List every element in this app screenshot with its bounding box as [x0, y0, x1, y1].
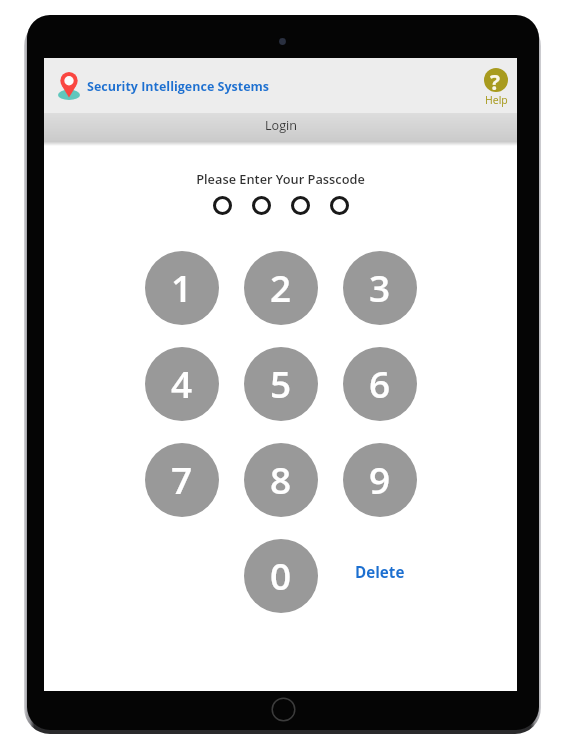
button[interactable]: Delete — [343, 539, 417, 613]
staticText: Security Intelligence Systems — [87, 78, 270, 95]
staticText: Please Enter Your Passcode — [44, 170, 517, 187]
staticText: 9 — [369, 454, 391, 504]
button[interactable]: 3 — [343, 251, 417, 325]
staticText: Help — [485, 93, 508, 107]
staticText: 7 — [171, 454, 193, 504]
staticText: 3 — [369, 262, 391, 312]
staticText: ? — [490, 68, 501, 92]
button[interactable]: 6 — [343, 347, 417, 421]
staticText: Login — [265, 117, 297, 134]
staticText: 5 — [270, 358, 292, 408]
button[interactable]: 1 — [145, 251, 219, 325]
button[interactable]: 5 — [244, 347, 318, 421]
button[interactable]: 9 — [343, 443, 417, 517]
staticText: Delete — [355, 562, 405, 583]
button[interactable]: 7 — [145, 443, 219, 517]
button[interactable]: Help — [484, 68, 508, 107]
staticText: 6 — [369, 358, 391, 408]
staticText: 4 — [171, 358, 193, 408]
button[interactable]: 4 — [145, 347, 219, 421]
button[interactable]: 8 — [244, 443, 318, 517]
button[interactable]: 0 — [244, 539, 318, 613]
staticText: 1 — [171, 262, 193, 312]
staticText: 8 — [270, 454, 292, 504]
staticText: 2 — [270, 262, 292, 312]
staticText: 0 — [270, 550, 292, 600]
button[interactable]: 2 — [244, 251, 318, 325]
